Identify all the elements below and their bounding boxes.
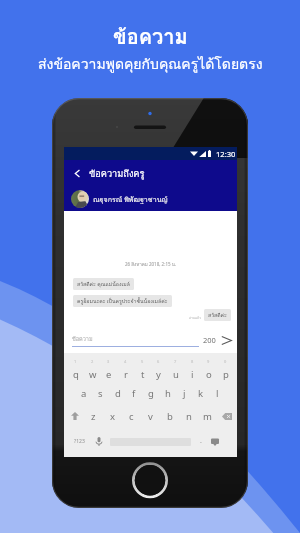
button[interactable]: สวัสดีค่ะ คุณแม่น้องเมล์: [77, 280, 130, 288]
button[interactable]: Backspace: [220, 409, 233, 423]
button[interactable]: n: [182, 409, 195, 423]
staticText: b: [167, 410, 173, 423]
staticText: w: [89, 368, 97, 381]
staticText: ครูอ้อมนะคะ เป็นครูประจำชั้นน้องเมล์ค่ะ: [77, 297, 168, 305]
staticText: f: [132, 387, 136, 400]
button[interactable]: j: [178, 386, 191, 400]
staticText: .: [200, 436, 202, 446]
staticText: ?123: [74, 438, 85, 445]
staticText: 5: [141, 359, 144, 364]
button[interactable]: v: [144, 409, 157, 423]
staticText: 8: [191, 359, 194, 364]
staticText: t: [141, 368, 145, 381]
button[interactable]: i: [186, 367, 199, 381]
button[interactable]: r: [119, 367, 132, 381]
staticText: y: [156, 368, 161, 381]
button[interactable]: Back: [72, 168, 83, 179]
button[interactable]: d: [111, 386, 124, 400]
button[interactable]: p: [219, 367, 232, 381]
staticText: i: [191, 368, 194, 381]
staticText: 6: [157, 359, 160, 364]
staticText: 2: [91, 359, 94, 364]
staticText: s: [98, 387, 103, 400]
staticText: ณฐุจกรณ์ พิพัฒฐาชานญ์: [93, 194, 168, 205]
staticText: o: [206, 368, 212, 381]
button[interactable]: สวัสดีค่ะ: [208, 311, 227, 319]
staticText: 7: [174, 359, 177, 364]
staticText: 26 สิงหาคม 2018, 2:15 น.: [64, 261, 237, 268]
staticText: อ่านแล้ว: [189, 315, 201, 320]
button[interactable]: Switch keyboard: [209, 436, 220, 447]
button[interactable]: .: [196, 435, 206, 448]
staticText: ข้อความ: [72, 335, 93, 344]
button[interactable]: q: [69, 367, 82, 381]
button[interactable]: u: [169, 367, 182, 381]
staticText: 0: [224, 359, 227, 364]
staticText: a: [81, 387, 87, 400]
staticText: v: [148, 410, 153, 423]
staticText: r: [124, 368, 128, 381]
staticText: l: [216, 387, 219, 400]
button[interactable]: b: [163, 409, 176, 423]
button[interactable]: g: [144, 386, 157, 400]
staticText: z: [91, 410, 96, 423]
staticText: 1: [74, 359, 77, 364]
button[interactable]: a: [77, 386, 90, 400]
button[interactable]: ?123: [69, 435, 89, 448]
button[interactable]: ครูอ้อมนะคะ เป็นครูประจำชั้นน้องเมล์ค่ะ: [77, 297, 168, 305]
button[interactable]: f: [127, 386, 140, 400]
staticText: c: [129, 410, 134, 423]
button[interactable]: o: [202, 367, 215, 381]
button[interactable]: z: [87, 409, 100, 423]
staticText: 12:30: [216, 149, 236, 159]
button[interactable]: h: [161, 386, 174, 400]
staticText: m: [203, 410, 212, 423]
staticText: 4: [124, 359, 127, 364]
staticText: d: [115, 387, 121, 400]
staticText: สวัสดีค่ะ คุณแม่น้องเมล์: [77, 280, 130, 288]
staticText: สวัสดีค่ะ: [208, 311, 227, 319]
button[interactable]: x: [106, 409, 119, 423]
staticText: ข้อความถึงครู: [89, 166, 145, 181]
button[interactable]: Send: [221, 335, 232, 346]
button[interactable]: w: [86, 367, 99, 381]
button[interactable]: y: [152, 367, 165, 381]
staticText: j: [183, 387, 186, 400]
button[interactable]: c: [125, 409, 138, 423]
staticText: 9: [207, 359, 210, 364]
staticText: h: [165, 387, 171, 400]
button[interactable]: s: [94, 386, 107, 400]
staticText: p: [223, 368, 229, 381]
staticText: e: [106, 368, 112, 381]
button[interactable]: l: [211, 386, 224, 400]
button[interactable]: t: [136, 367, 149, 381]
staticText: x: [110, 410, 116, 423]
staticText: g: [148, 387, 154, 400]
staticText: ส่งข้อความพูดคุยกับคุณครูได้โดยตรง: [38, 53, 263, 75]
button[interactable]: m: [201, 409, 214, 423]
staticText: n: [186, 410, 192, 423]
staticText: q: [73, 368, 79, 381]
staticText: 3: [107, 359, 110, 364]
staticText: 200: [203, 335, 216, 345]
button[interactable]: e: [102, 367, 115, 381]
staticText: ข้อความ: [113, 21, 188, 53]
staticText: k: [198, 387, 204, 400]
staticText: u: [173, 368, 179, 381]
button[interactable]: Voice input: [93, 436, 104, 447]
button[interactable]: Shift: [68, 409, 81, 423]
button[interactable]: k: [194, 386, 207, 400]
